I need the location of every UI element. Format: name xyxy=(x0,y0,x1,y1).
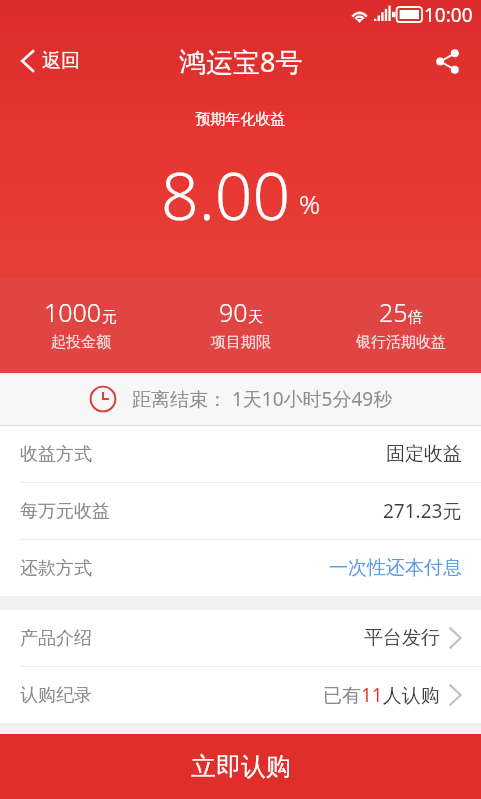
button[interactable]: 返回 xyxy=(0,39,96,83)
button[interactable]: 认购纪录 xyxy=(0,667,481,723)
staticText: 每万元收益 xyxy=(20,500,110,523)
staticText: 天 xyxy=(248,308,263,327)
button[interactable]: Share xyxy=(418,34,481,89)
staticText: 银行活期收益 xyxy=(356,333,446,352)
staticText: 还款方式 xyxy=(20,557,92,580)
button[interactable]: 立即认购 xyxy=(0,734,481,799)
staticText: 8.00 xyxy=(161,149,291,239)
staticText: 项目期限 xyxy=(211,333,271,352)
button[interactable]: 每万元收益 xyxy=(0,483,481,539)
staticText: 收益方式 xyxy=(20,443,92,466)
button[interactable]: 收益方式 xyxy=(0,426,481,482)
staticText: 起投金额 xyxy=(51,333,111,352)
staticText: 25 xyxy=(379,295,408,329)
staticText: 产品介绍 xyxy=(20,627,92,650)
staticText: 立即认购 xyxy=(191,751,291,782)
staticText: 平台发行 xyxy=(364,626,440,650)
staticText: 1000 xyxy=(44,295,102,329)
staticText: 271.23元 xyxy=(383,498,462,524)
staticText: 一次性还本付息 xyxy=(329,556,462,580)
staticText: 返回 xyxy=(42,49,80,73)
staticText: 元 xyxy=(102,308,117,327)
button[interactable]: 还款方式 xyxy=(0,540,481,596)
staticText: 90 xyxy=(219,295,248,329)
staticText: 认购纪录 xyxy=(20,684,92,707)
staticText: 固定收益 xyxy=(386,442,462,466)
staticText: 10:00 xyxy=(424,2,473,28)
staticText: 鸿运宝8号 xyxy=(179,43,303,80)
staticText: 已有11人认购 xyxy=(323,682,440,708)
staticText: % xyxy=(299,186,321,221)
staticText: 预期年化收益 xyxy=(0,110,481,129)
staticText: 距离结束： 1天10小时5分49秒 xyxy=(132,386,393,412)
staticText: 倍 xyxy=(408,308,423,327)
button[interactable]: 产品介绍 xyxy=(0,610,481,666)
